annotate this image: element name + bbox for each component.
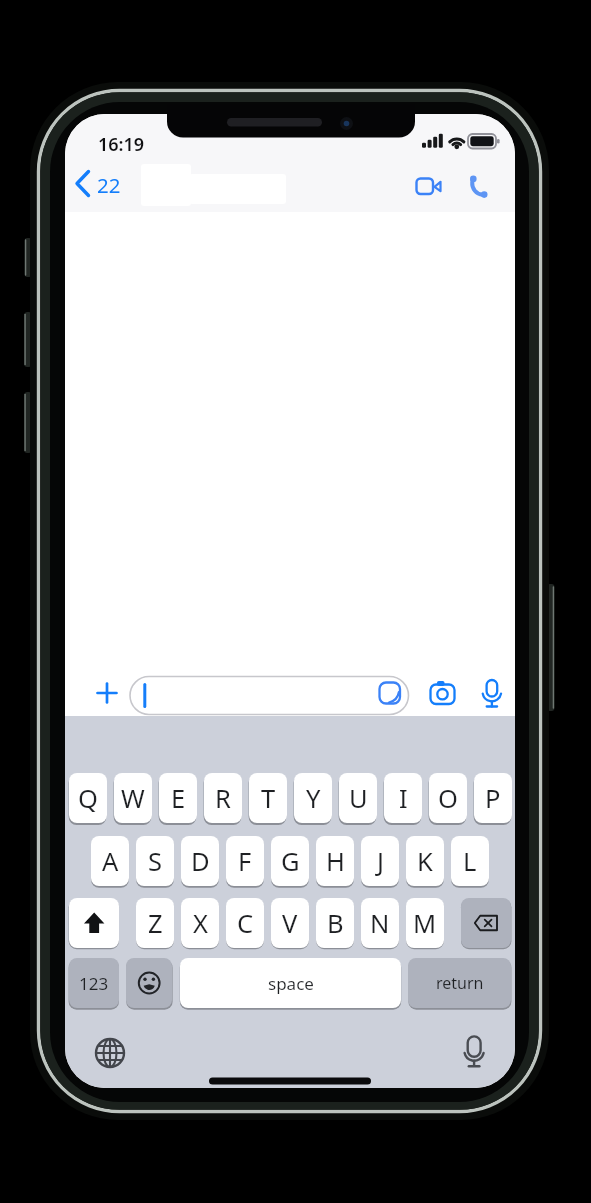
button[interactable]: G: [271, 836, 309, 886]
button[interactable]: M: [406, 898, 444, 948]
button[interactable]: R: [204, 773, 242, 823]
staticText: Y: [306, 781, 321, 816]
button[interactable]: [93, 1036, 127, 1070]
button[interactable]: W: [114, 773, 152, 823]
staticText: J: [377, 844, 384, 879]
button[interactable]: space: [180, 958, 401, 1008]
staticText: K: [417, 844, 433, 879]
staticText: F: [238, 844, 252, 879]
button[interactable]: A: [91, 836, 129, 886]
button[interactable]: [461, 898, 511, 948]
button[interactable]: Z: [136, 898, 174, 948]
staticText: L: [463, 844, 477, 879]
button[interactable]: K: [406, 836, 444, 886]
button[interactable]: H: [316, 836, 354, 886]
staticText: A: [102, 844, 119, 879]
button[interactable]: J: [361, 836, 399, 886]
button[interactable]: Y: [294, 773, 332, 823]
staticText: N: [370, 906, 390, 941]
staticText: D: [191, 844, 210, 879]
staticText: E: [171, 781, 186, 816]
staticText: space: [268, 972, 314, 995]
staticText: T: [261, 781, 276, 816]
staticText: U: [349, 781, 368, 816]
button[interactable]: V: [271, 898, 309, 948]
button[interactable]: [130, 676, 409, 715]
button[interactable]: F: [226, 836, 264, 886]
staticText: S: [148, 844, 162, 879]
staticText: W: [121, 781, 145, 816]
button[interactable]: P: [474, 773, 512, 823]
button[interactable]: L: [451, 836, 489, 886]
button[interactable]: [69, 898, 119, 948]
staticText: 16:19: [98, 132, 145, 152]
staticText: G: [281, 844, 300, 879]
button[interactable]: 123: [69, 958, 119, 1008]
staticText: 123: [79, 972, 109, 995]
button[interactable]: O: [429, 773, 467, 823]
staticText: M: [413, 906, 437, 941]
button[interactable]: [77, 166, 127, 200]
button[interactable]: B: [316, 898, 354, 948]
button[interactable]: D: [181, 836, 219, 886]
staticText: B: [327, 906, 344, 941]
staticText: O: [438, 781, 458, 816]
button[interactable]: U: [339, 773, 377, 823]
staticText: I: [399, 781, 408, 816]
button[interactable]: return: [408, 958, 511, 1008]
staticText: Z: [148, 906, 163, 941]
button[interactable]: 22: [92, 171, 126, 195]
button[interactable]: N: [361, 898, 399, 948]
button[interactable]: T: [249, 773, 287, 823]
staticText: C: [237, 906, 254, 941]
staticText: return: [436, 972, 484, 994]
button[interactable]: [480, 676, 504, 710]
staticText: R: [215, 781, 231, 816]
button[interactable]: Q: [69, 773, 107, 823]
staticText: P: [485, 781, 501, 816]
button[interactable]: I: [384, 773, 422, 823]
button[interactable]: [94, 680, 120, 706]
staticText: Q: [78, 781, 98, 816]
staticText: X: [193, 906, 208, 941]
button[interactable]: [427, 678, 458, 708]
button[interactable]: C: [226, 898, 264, 948]
staticText: 22: [97, 171, 121, 195]
button[interactable]: X: [181, 898, 219, 948]
button[interactable]: S: [136, 836, 174, 886]
button[interactable]: [410, 172, 442, 200]
button[interactable]: [468, 168, 498, 200]
button[interactable]: [457, 1033, 491, 1069]
button[interactable]: [126, 958, 172, 1008]
staticText: V: [282, 906, 298, 941]
button[interactable]: E: [159, 773, 197, 823]
staticText: H: [326, 844, 345, 879]
